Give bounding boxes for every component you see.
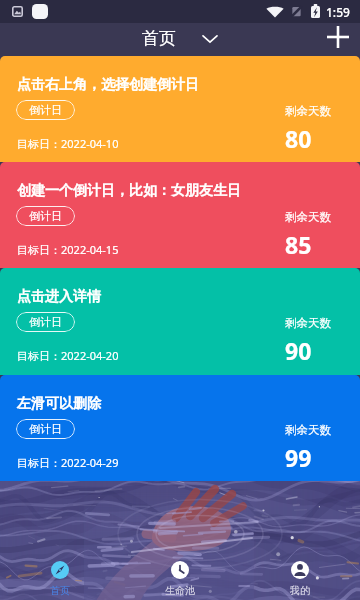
staticText: 首页 <box>50 584 70 597</box>
button[interactable]: 我的 <box>240 554 360 600</box>
staticText: 倒计日 <box>29 422 62 436</box>
staticText: 目标日：2022-04-10 <box>17 136 119 151</box>
staticText: 85 <box>285 229 312 260</box>
staticText: 我的 <box>290 584 310 597</box>
staticText: 生命池 <box>165 584 195 597</box>
button[interactable]: 生命池 <box>120 554 240 600</box>
staticText: 剩余天数 <box>285 316 331 330</box>
staticText: 倒计日 <box>29 103 62 117</box>
staticText: 倒计日 <box>29 209 62 223</box>
staticText: 创建一个倒计日，比如：女朋友生日 <box>17 182 241 200</box>
button[interactable]: 点击右上角，选择创建倒计日 <box>0 56 360 162</box>
staticText: 剩余天数 <box>285 210 331 224</box>
button[interactable]: 创建一个倒计日，比如：女朋友生日 <box>0 162 360 268</box>
staticText: 剩余天数 <box>285 104 331 118</box>
staticText: 倒计日 <box>29 315 62 329</box>
staticText: 99 <box>285 442 312 473</box>
staticText: 90 <box>285 335 312 366</box>
button[interactable]: 首页 <box>0 554 120 600</box>
staticText: 首页 <box>142 28 176 49</box>
button[interactable]: 左滑可以删除 <box>0 375 360 481</box>
staticText: 剩余天数 <box>285 423 331 437</box>
staticText: 点击进入详情 <box>17 288 101 306</box>
button[interactable]: 点击进入详情 <box>0 268 360 375</box>
staticText: 1:59 <box>326 4 350 20</box>
staticText: 目标日：2022-04-20 <box>17 348 119 363</box>
staticText: 目标日：2022-04-15 <box>17 242 119 257</box>
staticText: 点击右上角，选择创建倒计日 <box>17 76 199 94</box>
button[interactable]: 添加倒计日 <box>323 22 353 52</box>
staticText: 左滑可以删除 <box>17 395 101 413</box>
button[interactable]: 首页 <box>134 24 225 53</box>
staticText: 80 <box>285 123 312 154</box>
staticText: 目标日：2022-04-29 <box>17 455 119 470</box>
